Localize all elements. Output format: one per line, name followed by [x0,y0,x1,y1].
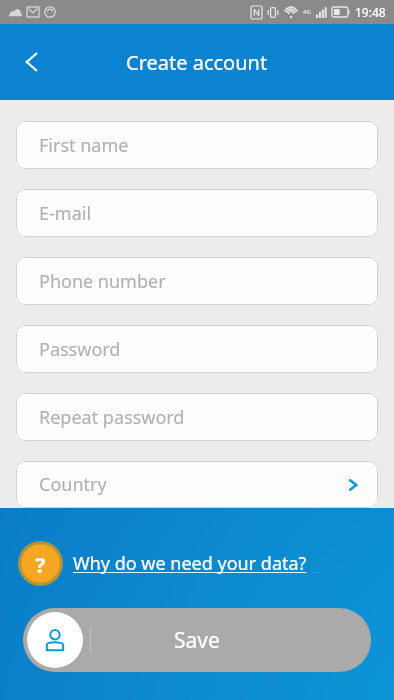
button[interactable]: Save [23,608,371,672]
button[interactable]: Password [16,325,378,373]
staticText: Phone number [39,269,166,294]
staticText: Password [39,337,121,362]
staticText: Country [39,472,107,497]
button[interactable]: E-mail [16,189,378,237]
staticText: 19:48 [355,4,386,20]
button[interactable]: Country [16,461,378,508]
staticText: E-mail [39,201,92,226]
button[interactable]: Repeat password [16,393,378,441]
button[interactable]: First name [16,121,378,169]
button[interactable]: Phone number [16,257,378,305]
staticText: Why do we need your data? [73,551,307,576]
staticText: Repeat password [39,405,185,430]
staticText: ? [35,549,46,579]
staticText: 4G [303,8,311,16]
staticText: First name [39,133,129,158]
staticText: Create account [126,49,268,76]
staticText: Save [174,626,220,655]
button[interactable]: Back [8,38,56,86]
button[interactable]: ? [18,541,307,586]
